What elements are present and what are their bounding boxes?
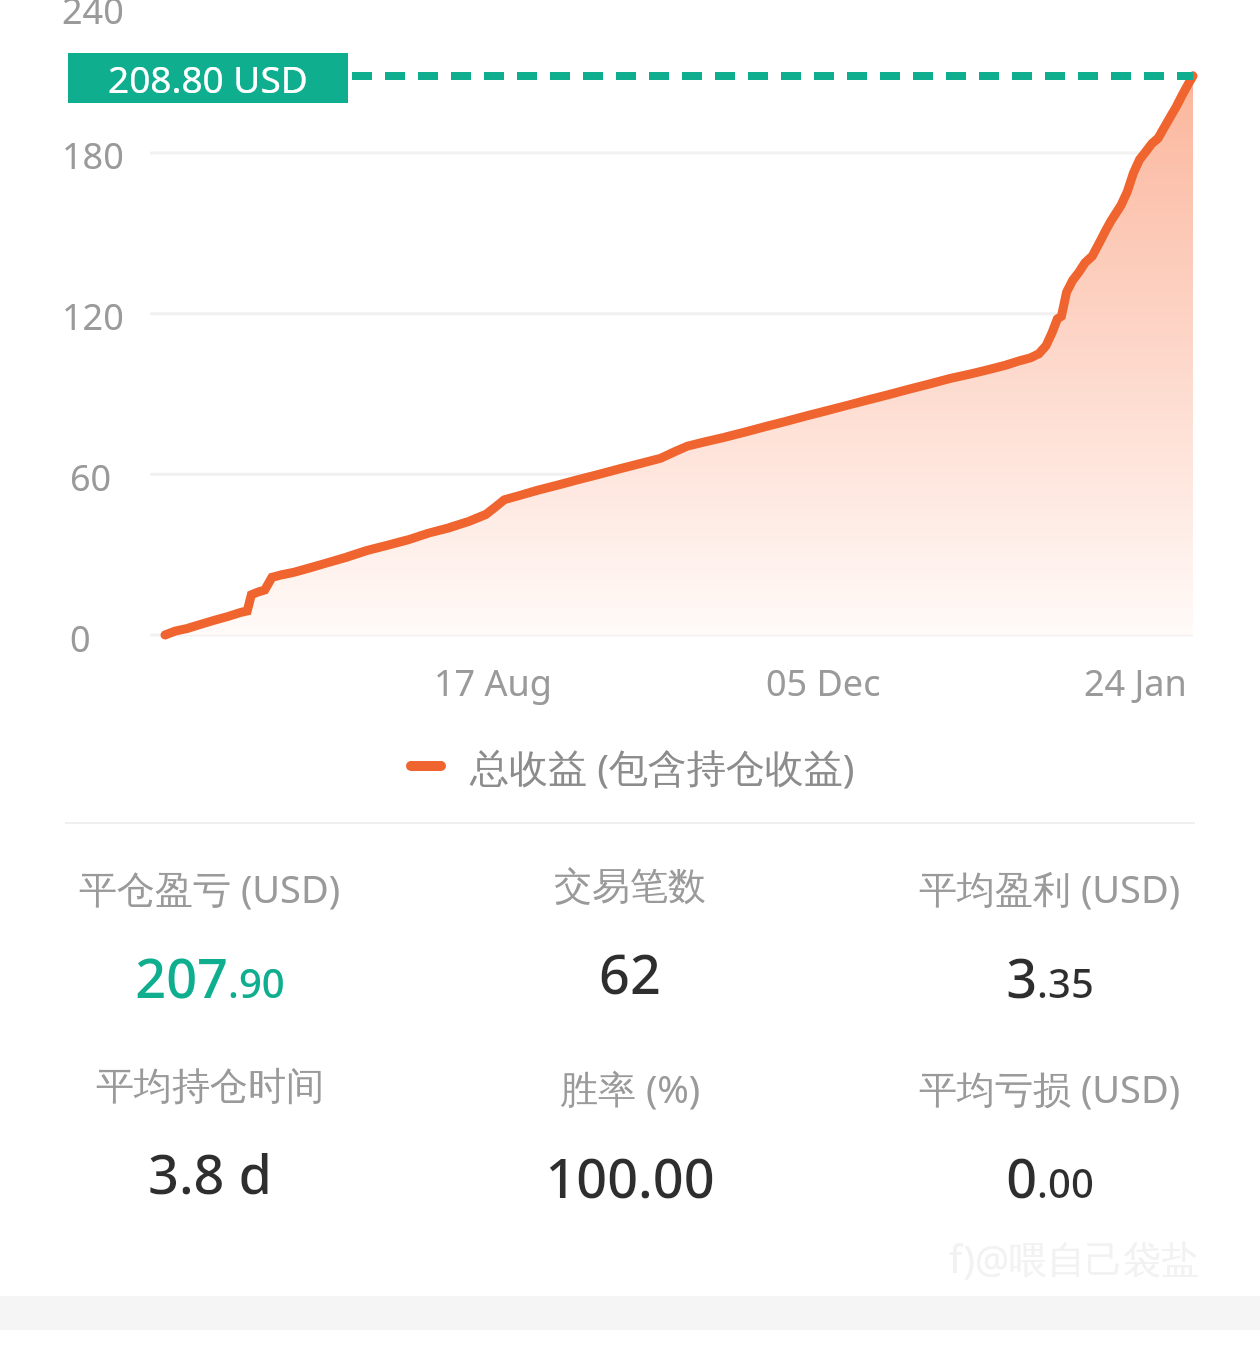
staticText: 3.35 [1006,940,1094,1014]
button[interactable]: 平均盈利 (USD) [840,862,1260,1014]
staticText: 100.00 [545,1140,715,1214]
button[interactable]: 胜率 (%) [420,1062,840,1214]
staticText: 平仓盈亏 (USD) [79,862,341,914]
staticText: 17 Aug [434,658,552,707]
button[interactable]: 交易笔数 [420,862,840,1010]
staticText: 208.80 USD [108,53,308,103]
button[interactable]: 平均亏损 (USD) [840,1062,1260,1214]
staticText: f)@喂自己袋盐 [949,1232,1200,1284]
button[interactable]: Total profit 208.80 USD [68,53,348,103]
staticText: 平均盈利 (USD) [919,862,1181,914]
staticText: 总收益 (包含持仓收益) [470,740,855,793]
staticText: 0 [70,614,91,663]
staticText: 平均持仓时间 [96,1062,324,1110]
staticText: 交易笔数 [554,862,706,910]
staticText: 120 [62,292,124,341]
staticText: 60 [70,453,112,502]
button[interactable]: 平均持仓时间 [0,1062,420,1210]
button[interactable]: 平仓盈亏 (USD) [0,862,420,1014]
staticText: 05 Dec [766,658,881,707]
staticText: 平均亏损 (USD) [919,1062,1181,1114]
staticText: 0.00 [1006,1140,1094,1214]
staticText: 207.90 [135,940,285,1014]
staticText: 240 [62,0,124,35]
button[interactable]: 总收益 (包含持仓收益) [0,710,1260,822]
staticText: 24 Jan [1084,658,1187,707]
staticText: 胜率 (%) [560,1062,701,1114]
staticText: 180 [62,131,124,180]
staticText: 3.8 d [148,1136,272,1210]
staticText: 62 [599,936,661,1010]
